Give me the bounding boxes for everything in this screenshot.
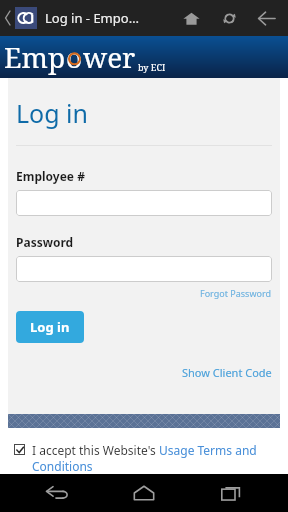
staticText: o [66,38,83,76]
staticText: by ECI [138,61,166,73]
button[interactable] [16,256,272,282]
button[interactable] [16,190,272,216]
staticText: Log in [16,96,89,130]
staticText: wer [83,38,136,76]
staticText: Conditions [32,458,93,474]
staticText: Emp [4,38,66,76]
button[interactable]: Log in [16,311,84,343]
button[interactable]: Home [114,474,174,512]
button[interactable]: Refresh [214,0,244,36]
button[interactable]: Back [27,474,87,512]
staticText: I accept this Website's [32,442,159,458]
staticText: Log in [30,318,70,336]
button[interactable]: I accept this Website's [14,442,278,474]
staticText: Password [16,234,74,250]
button[interactable]: ECi site icon [15,7,37,29]
button[interactable]: Home [176,0,206,36]
staticText: Usage Terms and [159,442,257,458]
button[interactable]: Back [250,0,284,36]
button[interactable]: Forgot Password [200,287,272,299]
button[interactable]: Back chevron [3,8,13,28]
button[interactable]: Show Client Code [182,365,272,380]
button[interactable]: Recent apps [201,474,261,512]
staticText: Log in - Empo… [45,9,139,27]
staticText: Employee # [16,168,85,184]
